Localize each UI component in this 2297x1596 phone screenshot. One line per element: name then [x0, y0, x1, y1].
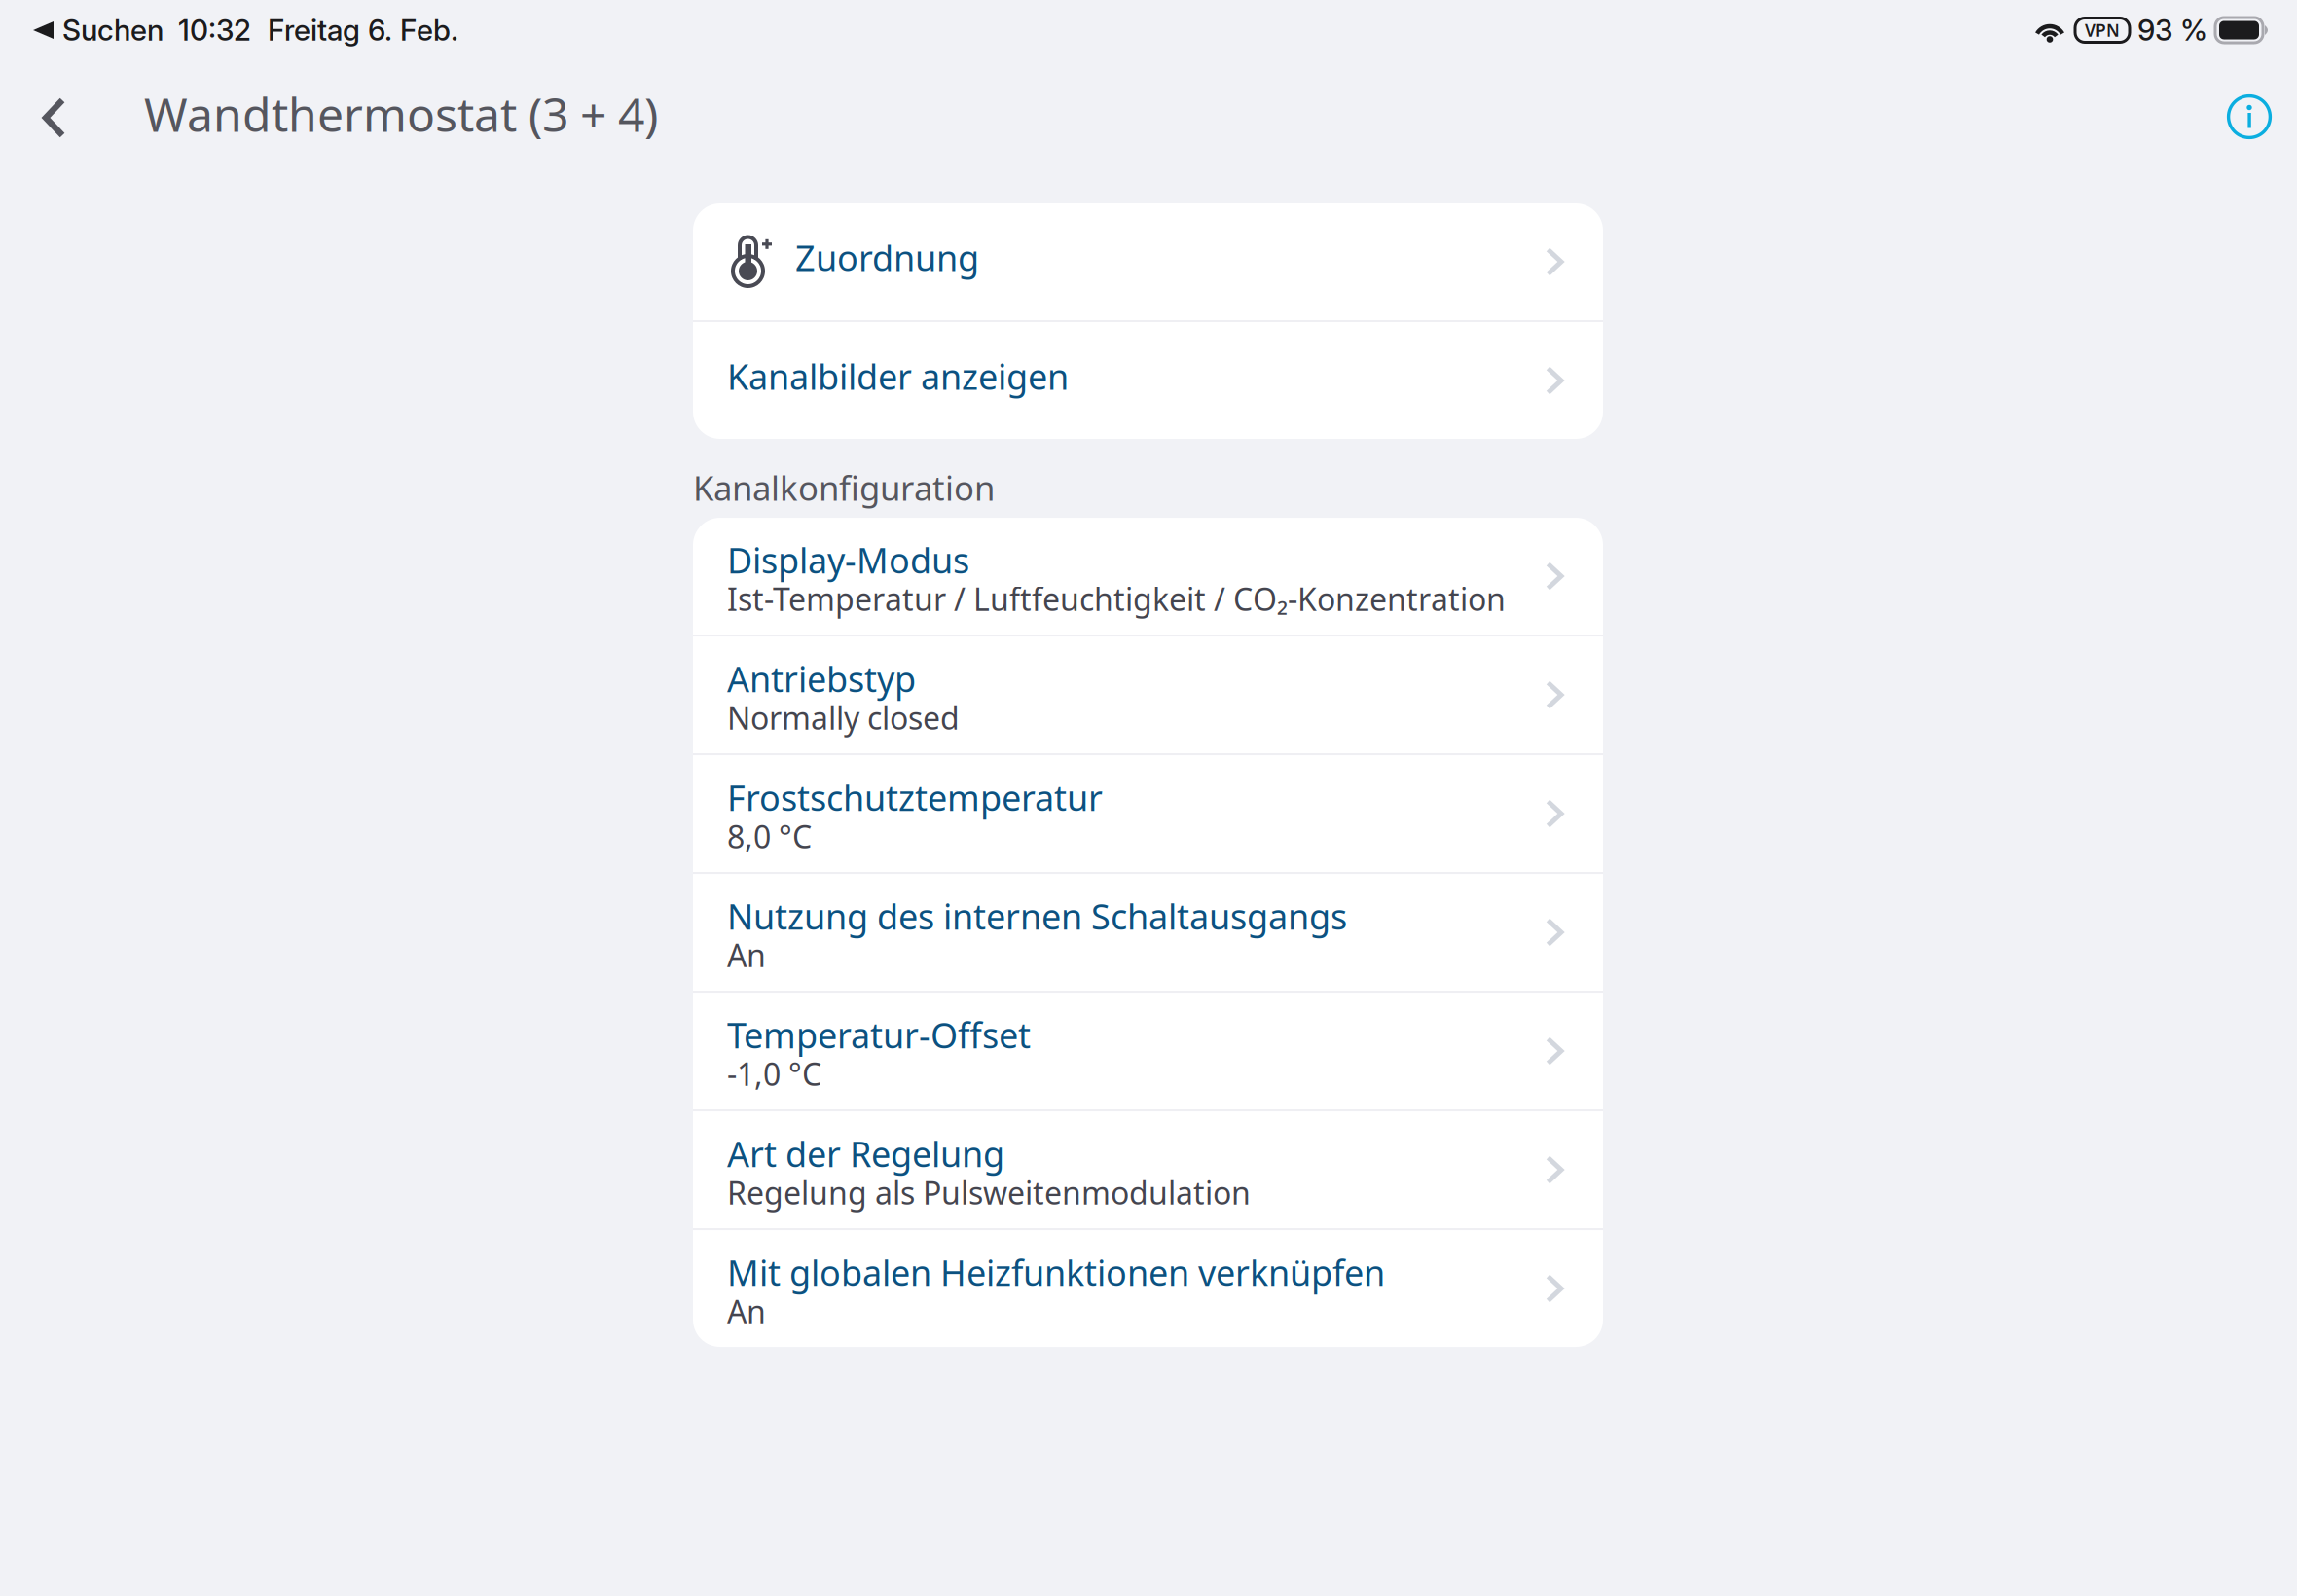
button[interactable]: Mit globalen Heizfunktionen verknüpfen	[693, 1230, 1603, 1347]
button[interactable]: Back	[0, 70, 86, 158]
button[interactable]: Antriebstyp	[693, 636, 1603, 753]
staticText: An	[727, 1291, 766, 1332]
staticText: Kanalbilder anzeigen	[727, 353, 1069, 399]
staticText: Temperatur-Offset	[727, 1012, 1031, 1058]
staticText: Zuordnung	[795, 234, 979, 281]
staticText: Frostschutztemperatur	[727, 774, 1103, 821]
staticText: An	[727, 934, 766, 976]
staticText: Mit globalen Heizfunktionen verknüpfen	[727, 1249, 1385, 1295]
button[interactable]: Info	[2204, 70, 2283, 158]
button[interactable]: Frostschutztemperatur	[693, 755, 1603, 872]
staticText: VPN	[2085, 19, 2120, 41]
staticText: Freitag 6. Feb.	[268, 13, 458, 48]
staticText: Regelung als Pulsweitenmodulation	[727, 1172, 1251, 1213]
staticText: 10:32	[178, 13, 251, 48]
staticText: Antriebstyp	[727, 655, 916, 702]
button[interactable]: Display-Modus	[693, 518, 1603, 635]
staticText: Nutzung des internen Schaltausgangs	[727, 893, 1347, 939]
staticText: Kanalkonfiguration	[693, 465, 995, 510]
button[interactable]: Kanalbilder anzeigen	[693, 322, 1603, 439]
staticText: -1,0 °C	[727, 1053, 821, 1095]
staticText: Display-Modus	[727, 537, 969, 583]
staticText: Wandthermostat (3 + 4)	[144, 83, 658, 145]
staticText: 8,0 °C	[727, 816, 812, 857]
button[interactable]: Zuordnung	[693, 203, 1603, 320]
staticText: Suchen	[62, 13, 164, 48]
button[interactable]: Nutzung des internen Schaltausgangs	[693, 874, 1603, 991]
staticText: Ist-Temperatur / Luftfeuchtigkeit / CO₂-…	[727, 578, 1506, 620]
staticText: 93 %	[2137, 13, 2207, 48]
button[interactable]: Temperatur-Offset	[693, 993, 1603, 1109]
button[interactable]: Art der Regelung	[693, 1111, 1603, 1228]
staticText: Art der Regelung	[727, 1130, 1004, 1177]
staticText: Normally closed	[727, 697, 960, 738]
